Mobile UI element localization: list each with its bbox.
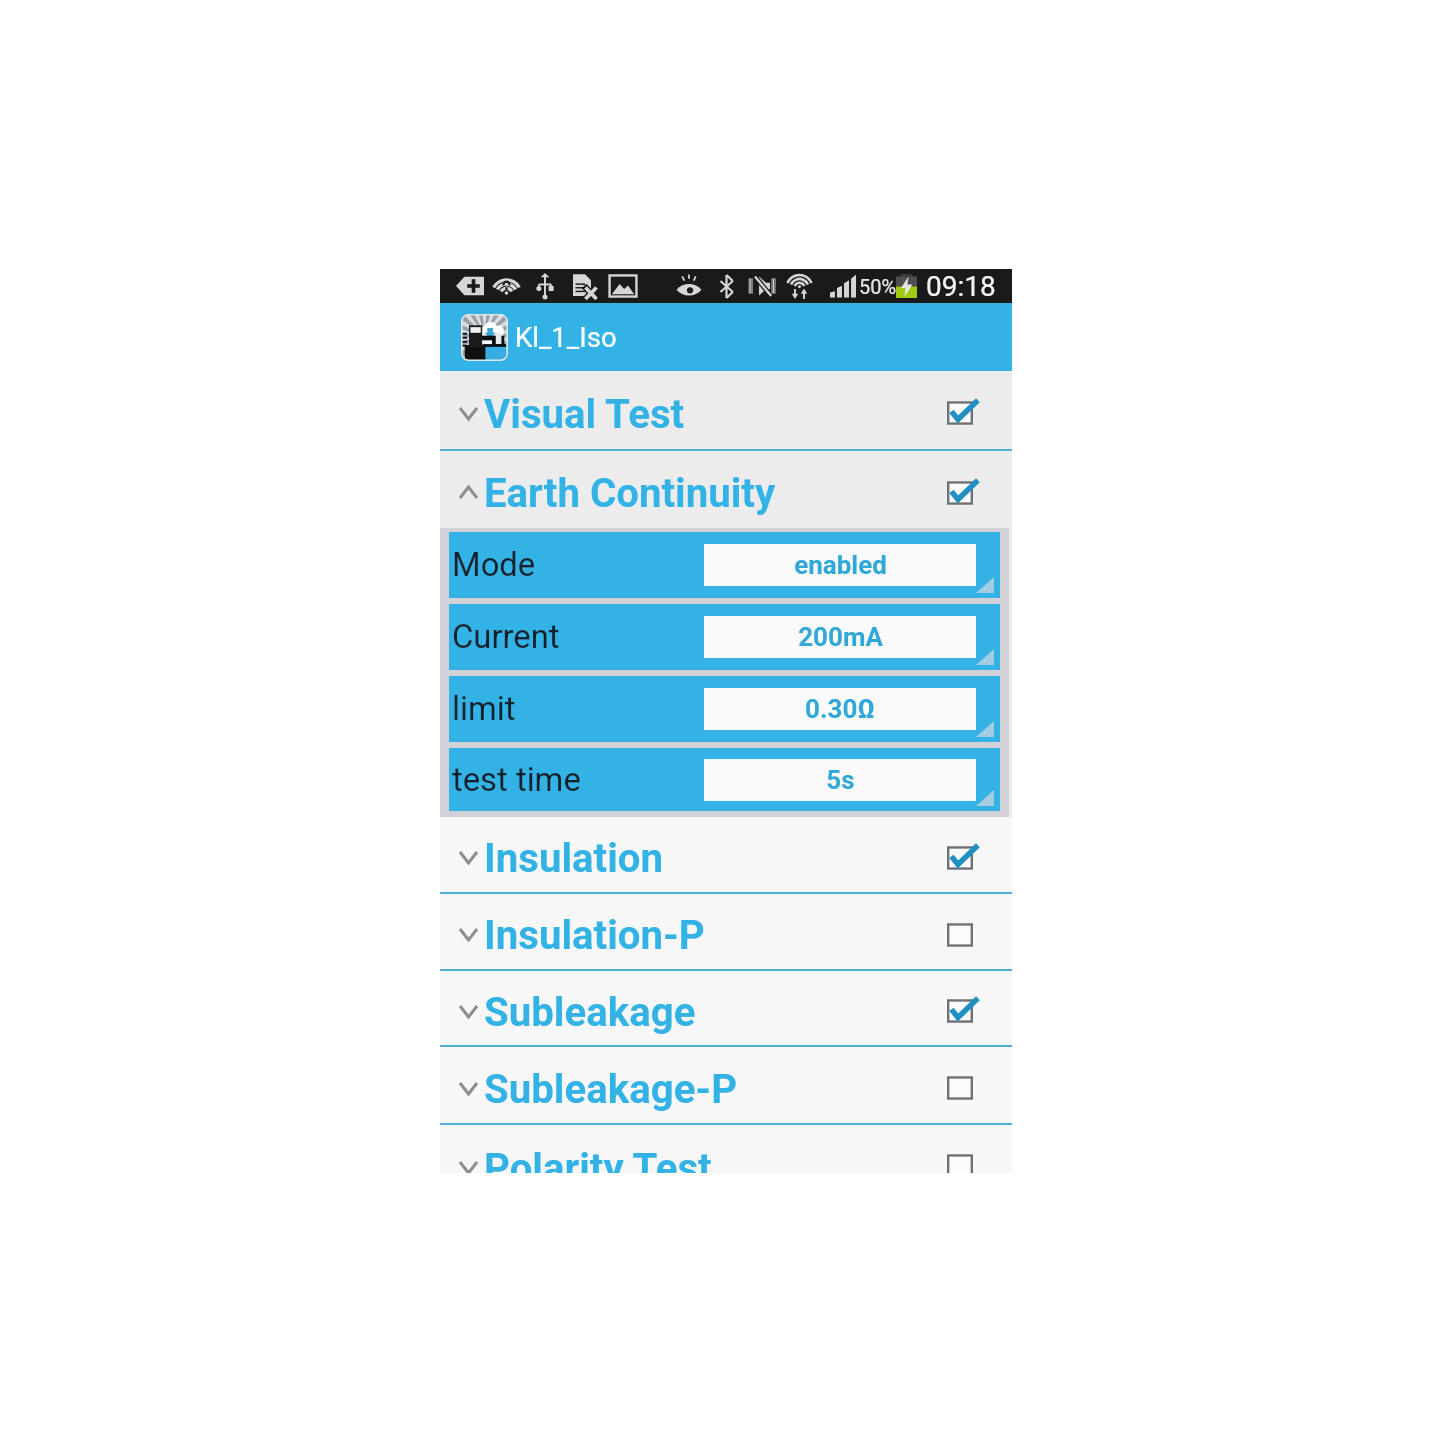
staticText: Earth Continuity: [484, 470, 776, 517]
button[interactable]: Subleakage: [440, 971, 1012, 1045]
staticText: 200mA: [798, 622, 883, 652]
button[interactable]: Mode: [449, 532, 1000, 598]
button[interactable]: Enabled: [947, 842, 981, 874]
button[interactable]: Enabled: [947, 995, 981, 1027]
button[interactable]: test time: [449, 748, 1000, 811]
button[interactable]: Insulation: [440, 817, 1012, 892]
button[interactable]: Kl_1_Iso app icon: [461, 314, 508, 361]
staticText: Polarity Test: [484, 1145, 712, 1173]
staticText: 50%: [859, 275, 897, 298]
staticText: Insulation: [484, 835, 664, 882]
button[interactable]: Polarity Test: [440, 1125, 1012, 1173]
staticText: test time: [452, 761, 581, 799]
staticText: Visual Test: [484, 391, 685, 438]
button[interactable]: limit: [449, 676, 1000, 742]
staticText: Insulation-P: [484, 912, 705, 959]
staticText: limit: [452, 690, 516, 728]
staticText: Subleakage: [484, 989, 696, 1036]
button[interactable]: Subleakage-P: [440, 1047, 1012, 1123]
button[interactable]: Insulation-P: [440, 894, 1012, 969]
button[interactable]: Earth Continuity: [440, 451, 1012, 528]
button[interactable]: Enabled: [947, 477, 981, 509]
staticText: 09:18: [926, 270, 996, 303]
staticText: 0.30Ω: [805, 694, 875, 724]
staticText: enabled: [794, 550, 887, 580]
staticText: Kl_1_Iso: [515, 321, 617, 353]
button[interactable]: Enabled: [947, 397, 981, 429]
staticText: Current: [452, 618, 560, 656]
staticText: Subleakage-P: [484, 1066, 738, 1113]
staticText: Mode: [452, 546, 536, 584]
button[interactable]: Disabled: [947, 1150, 981, 1173]
button[interactable]: Visual Test: [440, 371, 1012, 449]
button[interactable]: Current: [449, 604, 1000, 670]
button[interactable]: Disabled: [947, 919, 981, 951]
staticText: 5s: [826, 765, 855, 795]
button[interactable]: Disabled: [947, 1072, 981, 1104]
